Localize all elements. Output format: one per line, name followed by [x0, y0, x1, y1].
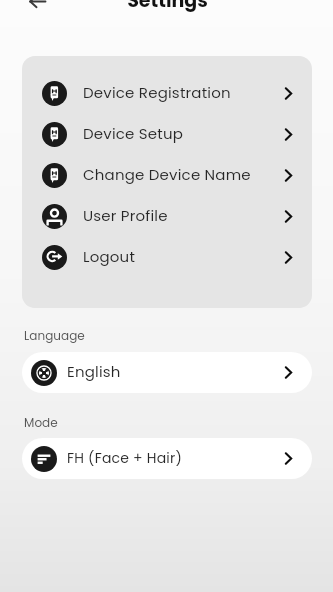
button[interactable]: FH (Face + Hair) — [22, 438, 312, 479]
staticText: Device Setup — [83, 123, 184, 144]
button[interactable]: Device Registration — [22, 73, 312, 114]
staticText: FH (Face + Hair) — [67, 448, 182, 468]
staticText: Settings — [1, 0, 333, 14]
button[interactable]: Back — [23, 0, 51, 15]
staticText: Mode — [24, 414, 58, 431]
staticText: User Profile — [83, 205, 168, 226]
staticText: Device Registration — [83, 82, 231, 103]
staticText: Change Device Name — [83, 164, 251, 185]
button[interactable]: Device Setup — [22, 114, 312, 155]
staticText: English — [67, 361, 121, 382]
button[interactable]: User Profile — [22, 196, 312, 237]
button[interactable]: Change Device Name — [22, 155, 312, 196]
staticText: Logout — [83, 246, 136, 267]
button[interactable]: Logout — [22, 237, 312, 278]
button[interactable]: English — [22, 352, 312, 393]
staticText: Language — [24, 327, 85, 344]
